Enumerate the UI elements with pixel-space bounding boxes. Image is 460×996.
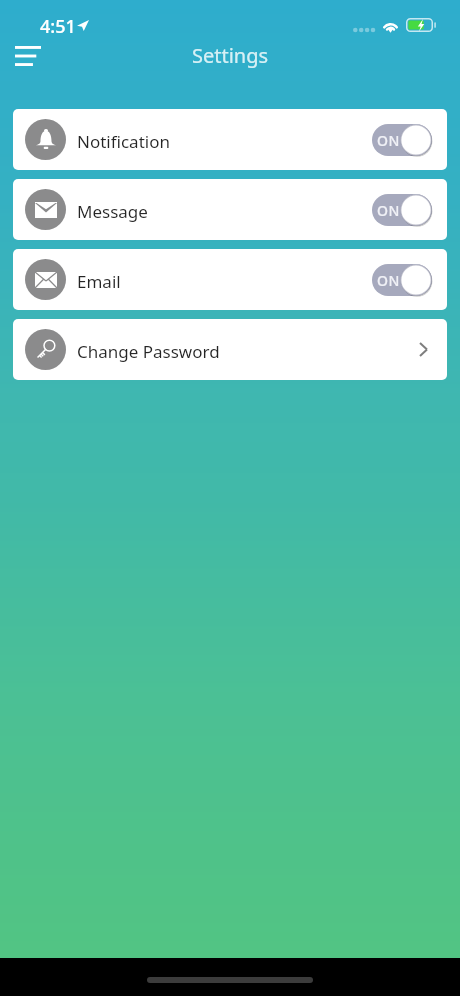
staticText: Email — [77, 270, 121, 293]
button[interactable]: Toggle on — [372, 264, 432, 296]
button[interactable]: Notification — [13, 109, 447, 170]
button[interactable]: Toggle on — [372, 194, 432, 226]
staticText: Settings — [192, 42, 269, 69]
staticText: ON — [377, 131, 401, 150]
staticText: Notification — [77, 130, 170, 153]
button[interactable]: Message — [13, 179, 447, 240]
staticText: Message — [77, 200, 148, 223]
staticText: ON — [377, 201, 401, 220]
staticText: Change Password — [77, 340, 220, 363]
button[interactable]: Menu — [6, 40, 50, 74]
button[interactable]: Email — [13, 249, 447, 310]
staticText: 4:51 — [40, 14, 76, 39]
button[interactable]: Change Password — [13, 319, 447, 380]
button[interactable]: Toggle on — [372, 124, 432, 156]
staticText: ON — [377, 271, 401, 290]
